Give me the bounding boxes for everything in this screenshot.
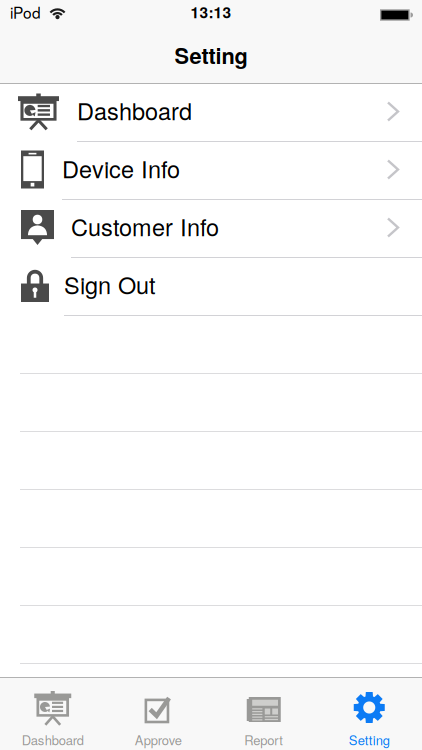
- staticText: iPod: [10, 1, 41, 23]
- staticText: 13:13: [190, 1, 231, 23]
- button[interactable]: Device Info: [0, 142, 422, 200]
- button[interactable]: Dashboard: [0, 84, 422, 142]
- staticText: Setting: [174, 39, 247, 71]
- staticText: Dashboard: [22, 730, 84, 749]
- staticText: Sign Out: [64, 267, 156, 301]
- staticText: Report: [244, 730, 283, 749]
- staticText: Dashboard: [77, 93, 192, 127]
- button[interactable]: Dashboard: [0, 678, 105, 750]
- button[interactable]: Report: [211, 678, 316, 750]
- button[interactable]: Sign Out: [0, 258, 422, 316]
- staticText: Device Info: [62, 151, 180, 185]
- button[interactable]: Customer Info: [0, 200, 422, 258]
- button[interactable]: Setting: [316, 678, 422, 750]
- staticText: Customer Info: [71, 209, 219, 243]
- button[interactable]: Approve: [105, 678, 211, 750]
- staticText: Approve: [135, 730, 182, 749]
- staticText: Setting: [349, 730, 390, 749]
